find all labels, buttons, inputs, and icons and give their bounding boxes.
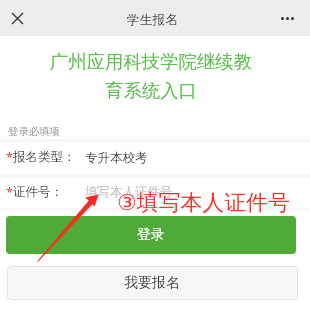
staticText: 报名类型： xyxy=(13,149,76,165)
staticText: 学生报名 xyxy=(127,12,179,28)
staticText: 专升本校考 xyxy=(85,150,148,166)
button[interactable]: 我要报名 xyxy=(7,266,298,300)
button[interactable]: More options xyxy=(274,8,300,29)
button[interactable]: Close xyxy=(7,8,27,28)
button[interactable]: * xyxy=(0,141,310,174)
staticText: 登录必填项 xyxy=(8,125,60,138)
button[interactable]: 登录 xyxy=(6,216,296,254)
staticText: * xyxy=(6,184,13,201)
staticText: 我要报名 xyxy=(124,274,180,292)
staticText: 证件号： xyxy=(13,184,63,200)
staticText: * xyxy=(6,149,13,166)
staticText: 广州应用科技学院继续教育系统入口 xyxy=(44,50,258,102)
staticText: ③填写本人证件号 xyxy=(117,189,290,217)
staticText: 填写本人证件号 xyxy=(85,184,173,200)
button[interactable]: * xyxy=(0,176,310,208)
staticText: 登录 xyxy=(137,226,165,243)
